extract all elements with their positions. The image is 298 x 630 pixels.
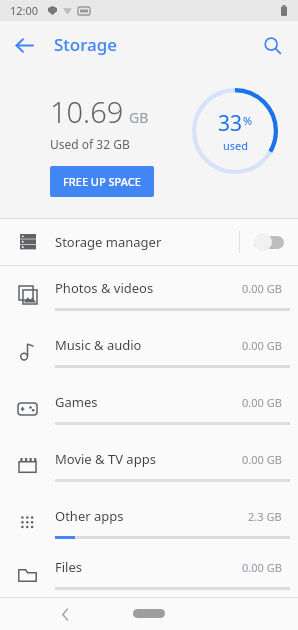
staticText: 10.69 (50, 92, 124, 131)
staticText: Games (55, 393, 242, 411)
staticText: 0.00 GB (242, 281, 282, 296)
staticText: Used of 32 GB (50, 136, 130, 152)
staticText: GB (129, 108, 149, 127)
button[interactable]: Movie & TV apps (0, 437, 298, 494)
button[interactable]: Back (50, 599, 80, 629)
staticText: used (223, 138, 249, 153)
button[interactable]: Music & audio (0, 323, 298, 380)
staticText: Other apps (55, 507, 248, 525)
staticText: Files (55, 558, 242, 576)
button[interactable]: Other apps (0, 494, 298, 551)
button[interactable]: Files (0, 551, 298, 597)
staticText: Music & audio (55, 336, 242, 354)
button[interactable]: Home (133, 609, 165, 618)
button[interactable]: Storage manager toggle (254, 233, 284, 251)
staticText: 33 (218, 109, 243, 138)
staticText: 12:00 (10, 3, 39, 18)
button[interactable]: Photos & videos (0, 266, 298, 323)
button[interactable]: FREE UP SPACE (50, 166, 154, 197)
staticText: Storage manager (55, 233, 239, 251)
button[interactable]: Storage manager (0, 219, 298, 265)
staticText: FREE UP SPACE (63, 174, 141, 189)
button[interactable]: Games (0, 380, 298, 437)
staticText: % (243, 113, 253, 128)
staticText: Movie & TV apps (55, 450, 242, 468)
staticText: 0.00 GB (242, 560, 282, 575)
staticText: 0.00 GB (242, 452, 282, 467)
staticText: Storage (54, 33, 118, 56)
staticText: 0.00 GB (242, 338, 282, 353)
staticText: 0.00 GB (242, 395, 282, 410)
button[interactable]: Back (6, 27, 42, 63)
button[interactable]: Search (254, 27, 290, 63)
staticText: Photos & videos (55, 279, 242, 297)
staticText: 2.3 GB (248, 509, 282, 524)
